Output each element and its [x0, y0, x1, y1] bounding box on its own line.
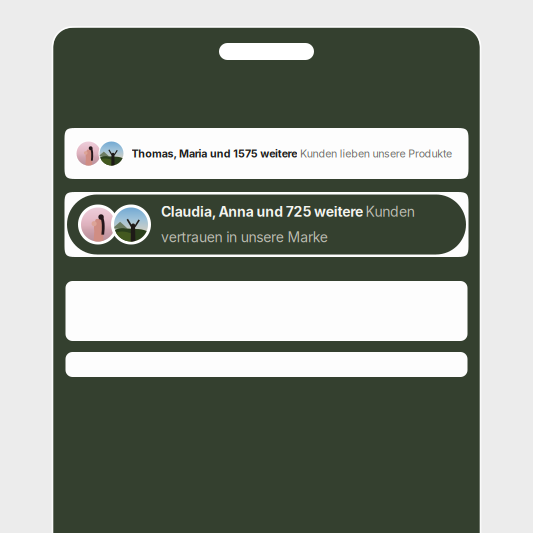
button[interactable]	[65, 352, 467, 377]
button[interactable]: Thomas, Maria und 1575 weitere Kunden li…	[64, 128, 468, 179]
staticText: Thomas, Maria und 1575 weitere Kunden li…	[131, 147, 452, 160]
button[interactable]	[65, 281, 467, 341]
button[interactable]: Claudia, Anna und 725 weitere Kunden ver…	[64, 192, 468, 257]
staticText: Claudia, Anna und 725 weitere Kunden ver…	[161, 203, 415, 245]
